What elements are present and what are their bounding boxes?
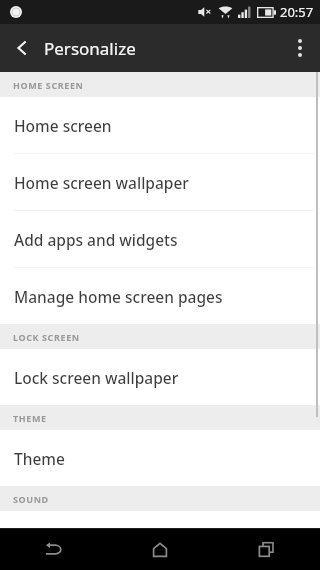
button[interactable]: Theme: [0, 430, 320, 486]
button[interactable]: Home screen wallpaper: [0, 154, 320, 210]
button[interactable]: Recent apps: [213, 529, 320, 570]
staticText: Manage home screen pages: [14, 286, 223, 307]
button[interactable]: Lock screen wallpaper: [0, 349, 320, 405]
staticText: THEME: [13, 412, 47, 424]
staticText: Lock screen wallpaper: [14, 367, 179, 388]
button[interactable]: Back: [0, 24, 44, 72]
staticText: Home screen wallpaper: [14, 172, 189, 193]
button[interactable]: Home: [106, 529, 213, 570]
button[interactable]: Add apps and widgets: [0, 211, 320, 267]
staticText: LOCK SCREEN: [13, 331, 80, 343]
staticText: 20:57: [280, 3, 314, 21]
staticText: Home screen: [14, 115, 112, 136]
staticText: SOUND: [13, 493, 49, 505]
button[interactable]: Home screen: [0, 97, 320, 153]
button[interactable]: Back: [0, 529, 106, 570]
staticText: Theme: [14, 448, 65, 469]
button[interactable]: Manage home screen pages: [0, 268, 320, 324]
staticText: HOME SCREEN: [13, 79, 84, 91]
button[interactable]: More options: [280, 24, 320, 72]
staticText: Personalize: [44, 37, 136, 60]
staticText: Add apps and widgets: [14, 229, 178, 250]
